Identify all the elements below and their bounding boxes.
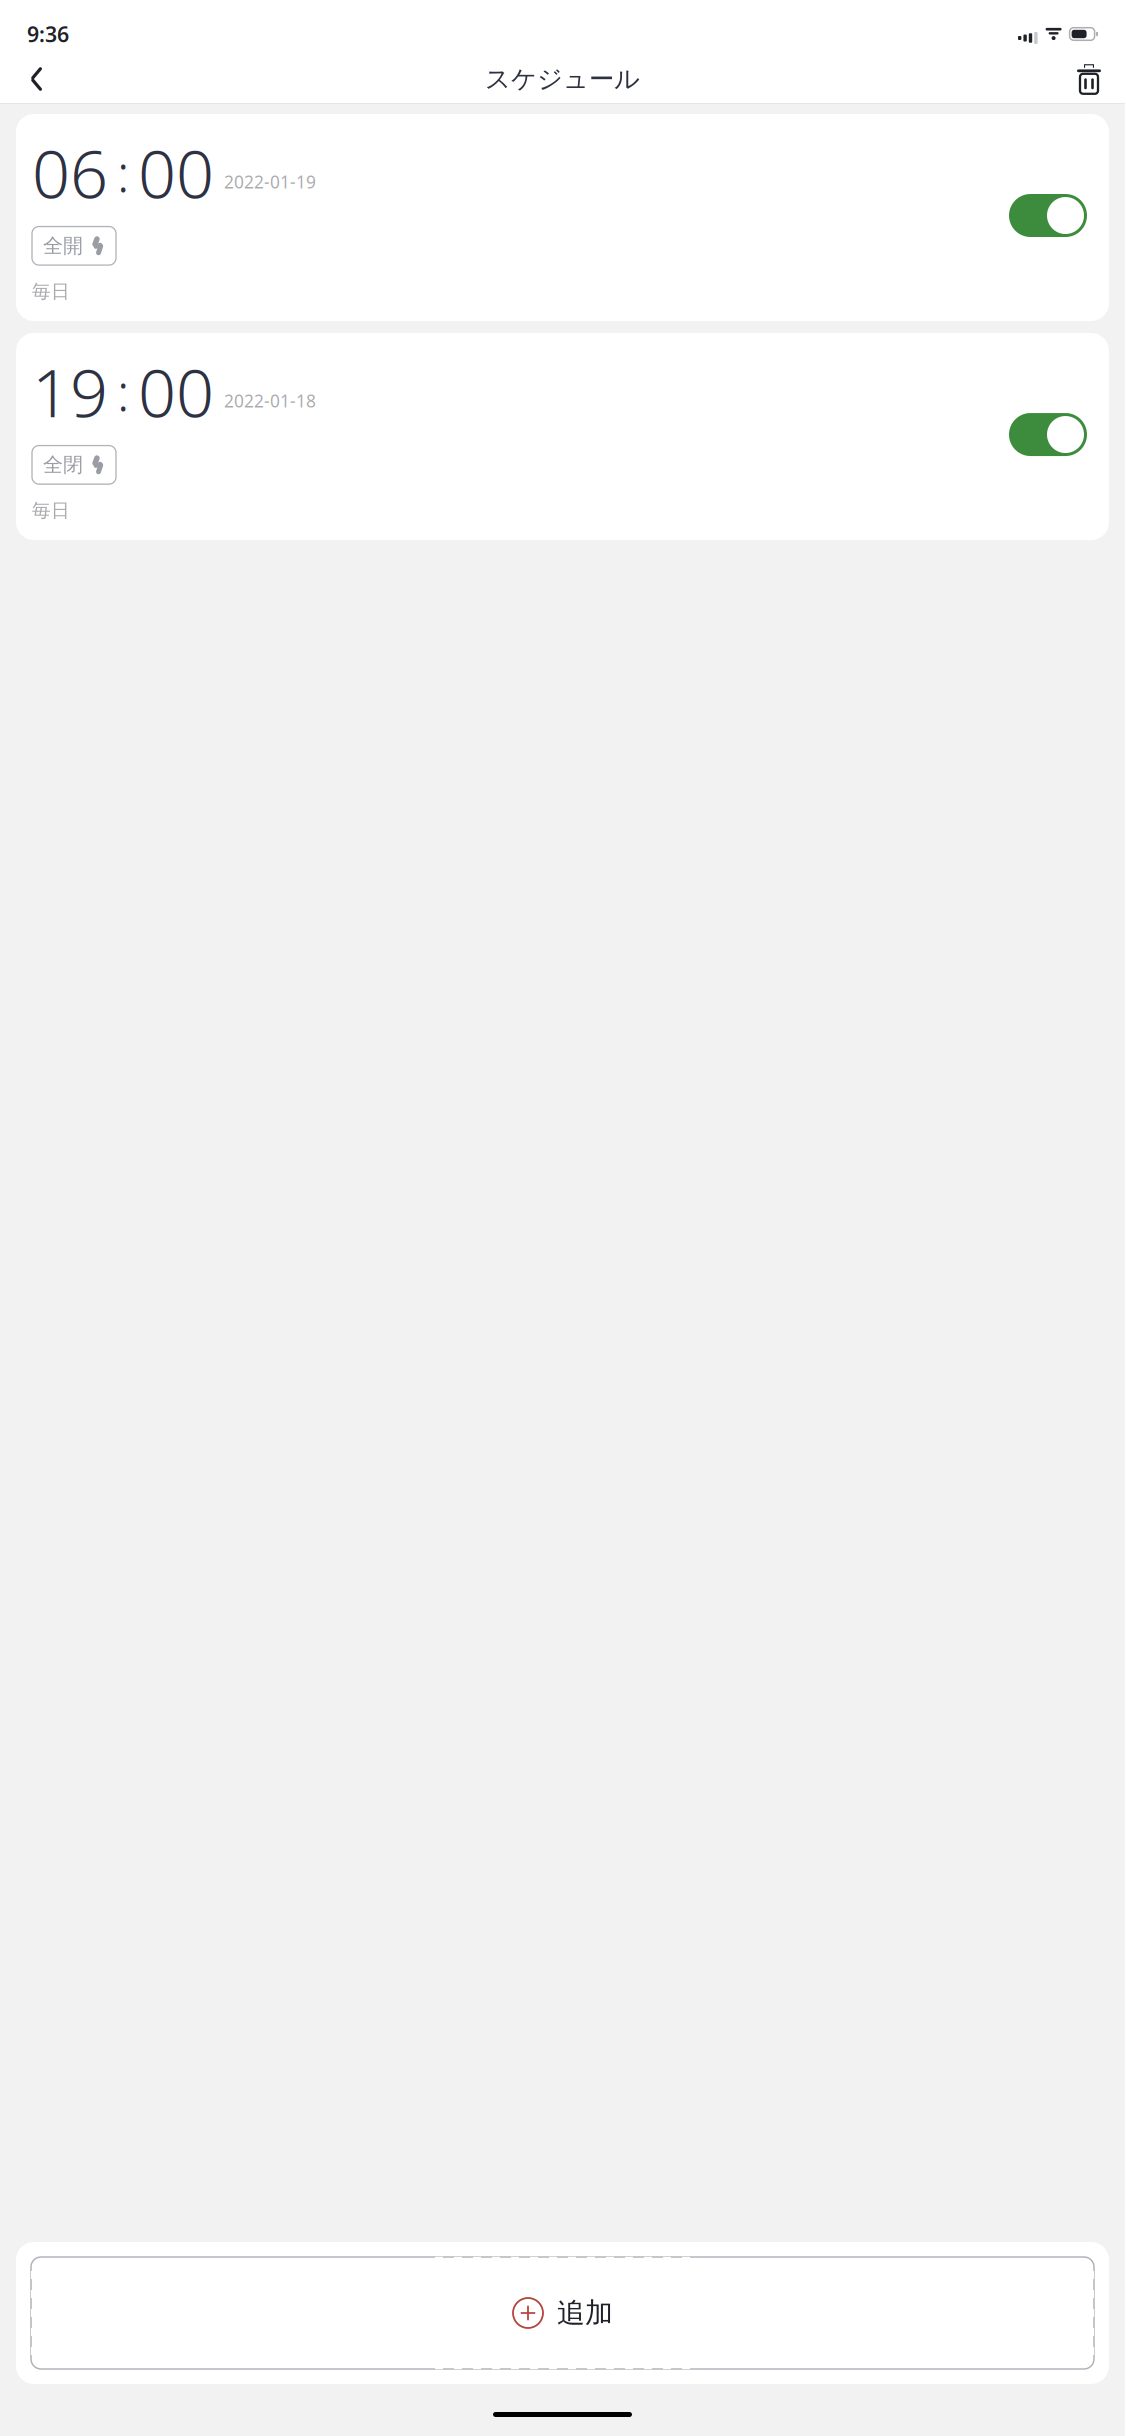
- staticText: 2022-01-18: [224, 389, 316, 412]
- staticText: 2022-01-19: [224, 170, 316, 193]
- staticText: 06: [32, 128, 108, 216]
- staticText: :: [117, 139, 129, 206]
- staticText: 19: [32, 347, 108, 435]
- staticText: 全閉: [43, 453, 83, 477]
- staticText: 全開: [43, 233, 83, 258]
- staticText: 毎日: [32, 499, 70, 522]
- button[interactable]: 戻る: [12, 55, 60, 103]
- staticText: 毎日: [32, 280, 70, 303]
- staticText: スケジュール: [485, 63, 640, 94]
- staticText: 00: [138, 128, 214, 216]
- button[interactable]: 06: [16, 114, 1109, 321]
- staticText: :: [117, 358, 129, 425]
- button[interactable]: スケジュール有効: [1009, 413, 1087, 456]
- button[interactable]: 19: [16, 333, 1109, 540]
- staticText: 9:36: [27, 20, 69, 48]
- staticText: 追加: [557, 2296, 613, 2330]
- staticText: 00: [138, 347, 214, 435]
- button[interactable]: 削除: [1065, 55, 1113, 103]
- button[interactable]: スケジュール有効: [1009, 194, 1087, 237]
- button[interactable]: 追加: [16, 2242, 1109, 2384]
